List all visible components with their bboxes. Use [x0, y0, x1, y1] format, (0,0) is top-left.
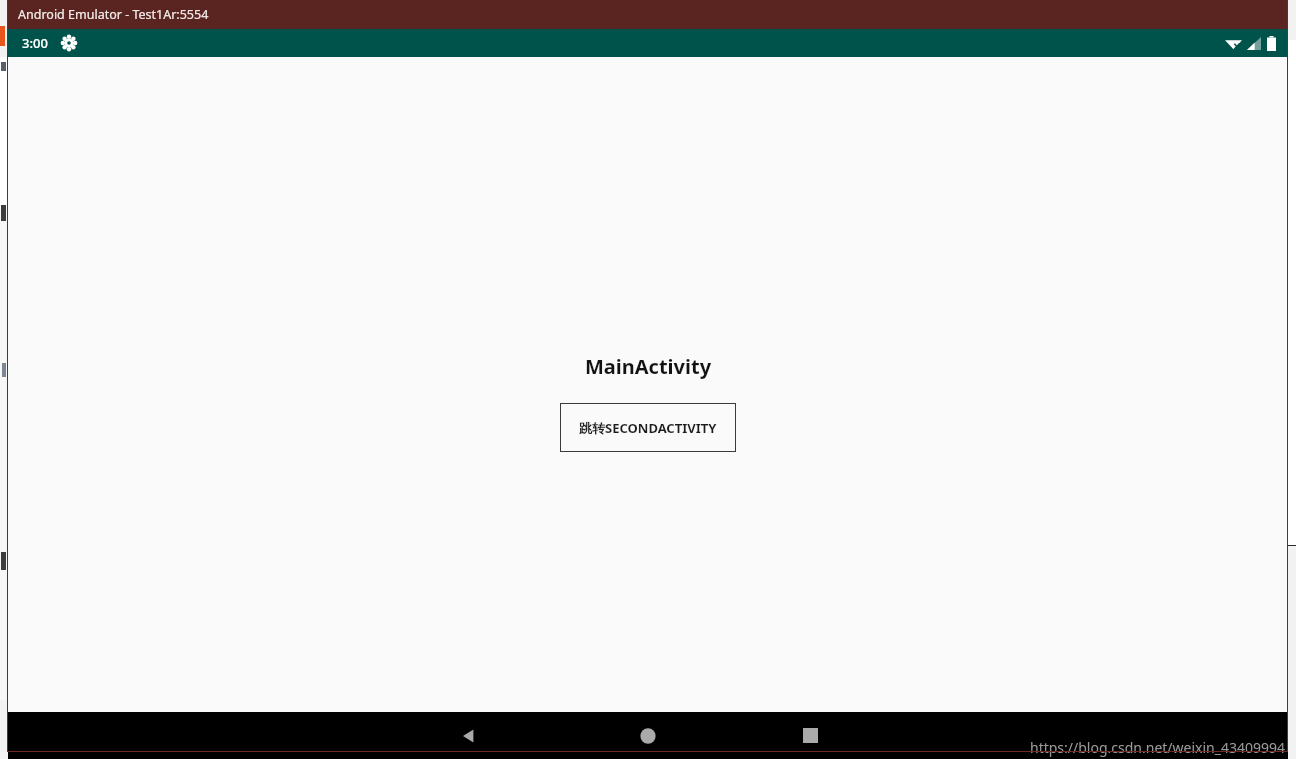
button[interactable]: 跳转SECONDACTIVITY [560, 403, 736, 452]
staticText: 3:00 [22, 34, 48, 52]
staticText: 跳转SECONDACTIVITY [579, 419, 717, 437]
button[interactable]: Home [624, 712, 672, 759]
button[interactable]: Recent apps [786, 712, 834, 759]
staticText: MainActivity [8, 353, 1288, 380]
staticText: https://blog.csdn.net/weixin_43409994 [1030, 738, 1286, 757]
staticText: Android Emulator - Test1Ar:5554 [18, 6, 209, 23]
button[interactable]: Back [445, 712, 493, 759]
